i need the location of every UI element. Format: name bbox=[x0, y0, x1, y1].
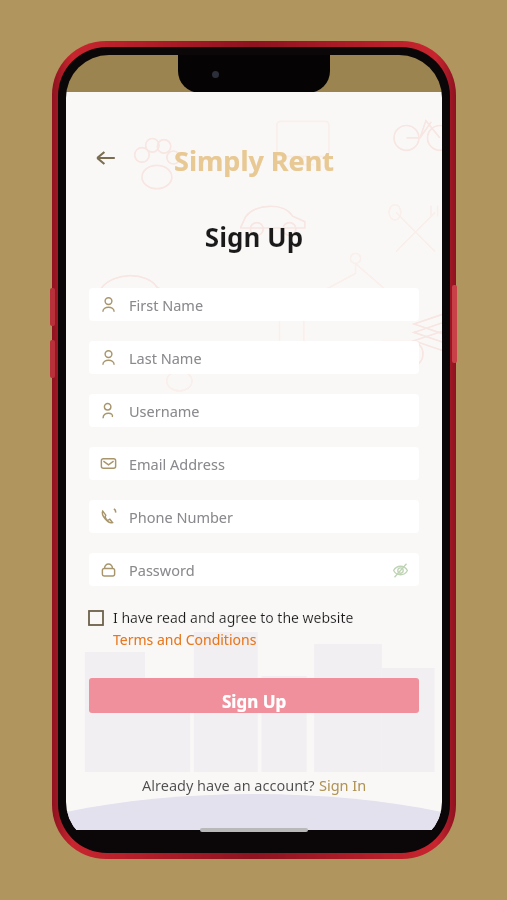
button[interactable]: I have read and agree to the website bbox=[89, 608, 419, 649]
staticText: Already have an account? bbox=[142, 775, 319, 795]
button[interactable]: Phone Number bbox=[89, 500, 419, 533]
staticText: Username bbox=[129, 401, 200, 421]
button[interactable]: Username bbox=[89, 394, 419, 427]
staticText: Email Address bbox=[129, 454, 225, 474]
button[interactable]: Sign Up bbox=[89, 678, 419, 713]
staticText: Sign Up bbox=[222, 690, 287, 713]
button[interactable]: Terms and Conditions bbox=[113, 630, 257, 649]
staticText: Last Name bbox=[129, 348, 202, 368]
button[interactable]: Show password bbox=[387, 557, 413, 583]
staticText: Phone Number bbox=[129, 507, 234, 527]
staticText: First Name bbox=[129, 295, 204, 315]
staticText: Simply Rent bbox=[66, 142, 442, 179]
button[interactable]: First Name bbox=[89, 288, 419, 321]
staticText: Password bbox=[129, 560, 195, 580]
staticText: I have read and agree to the website bbox=[113, 608, 354, 627]
button[interactable]: Last Name bbox=[89, 341, 419, 374]
staticText: Sign Up bbox=[66, 219, 442, 254]
button[interactable]: Email Address bbox=[89, 447, 419, 480]
button[interactable]: Back bbox=[86, 138, 126, 178]
button[interactable]: Sign In bbox=[319, 775, 367, 795]
button[interactable]: Password bbox=[89, 553, 419, 586]
